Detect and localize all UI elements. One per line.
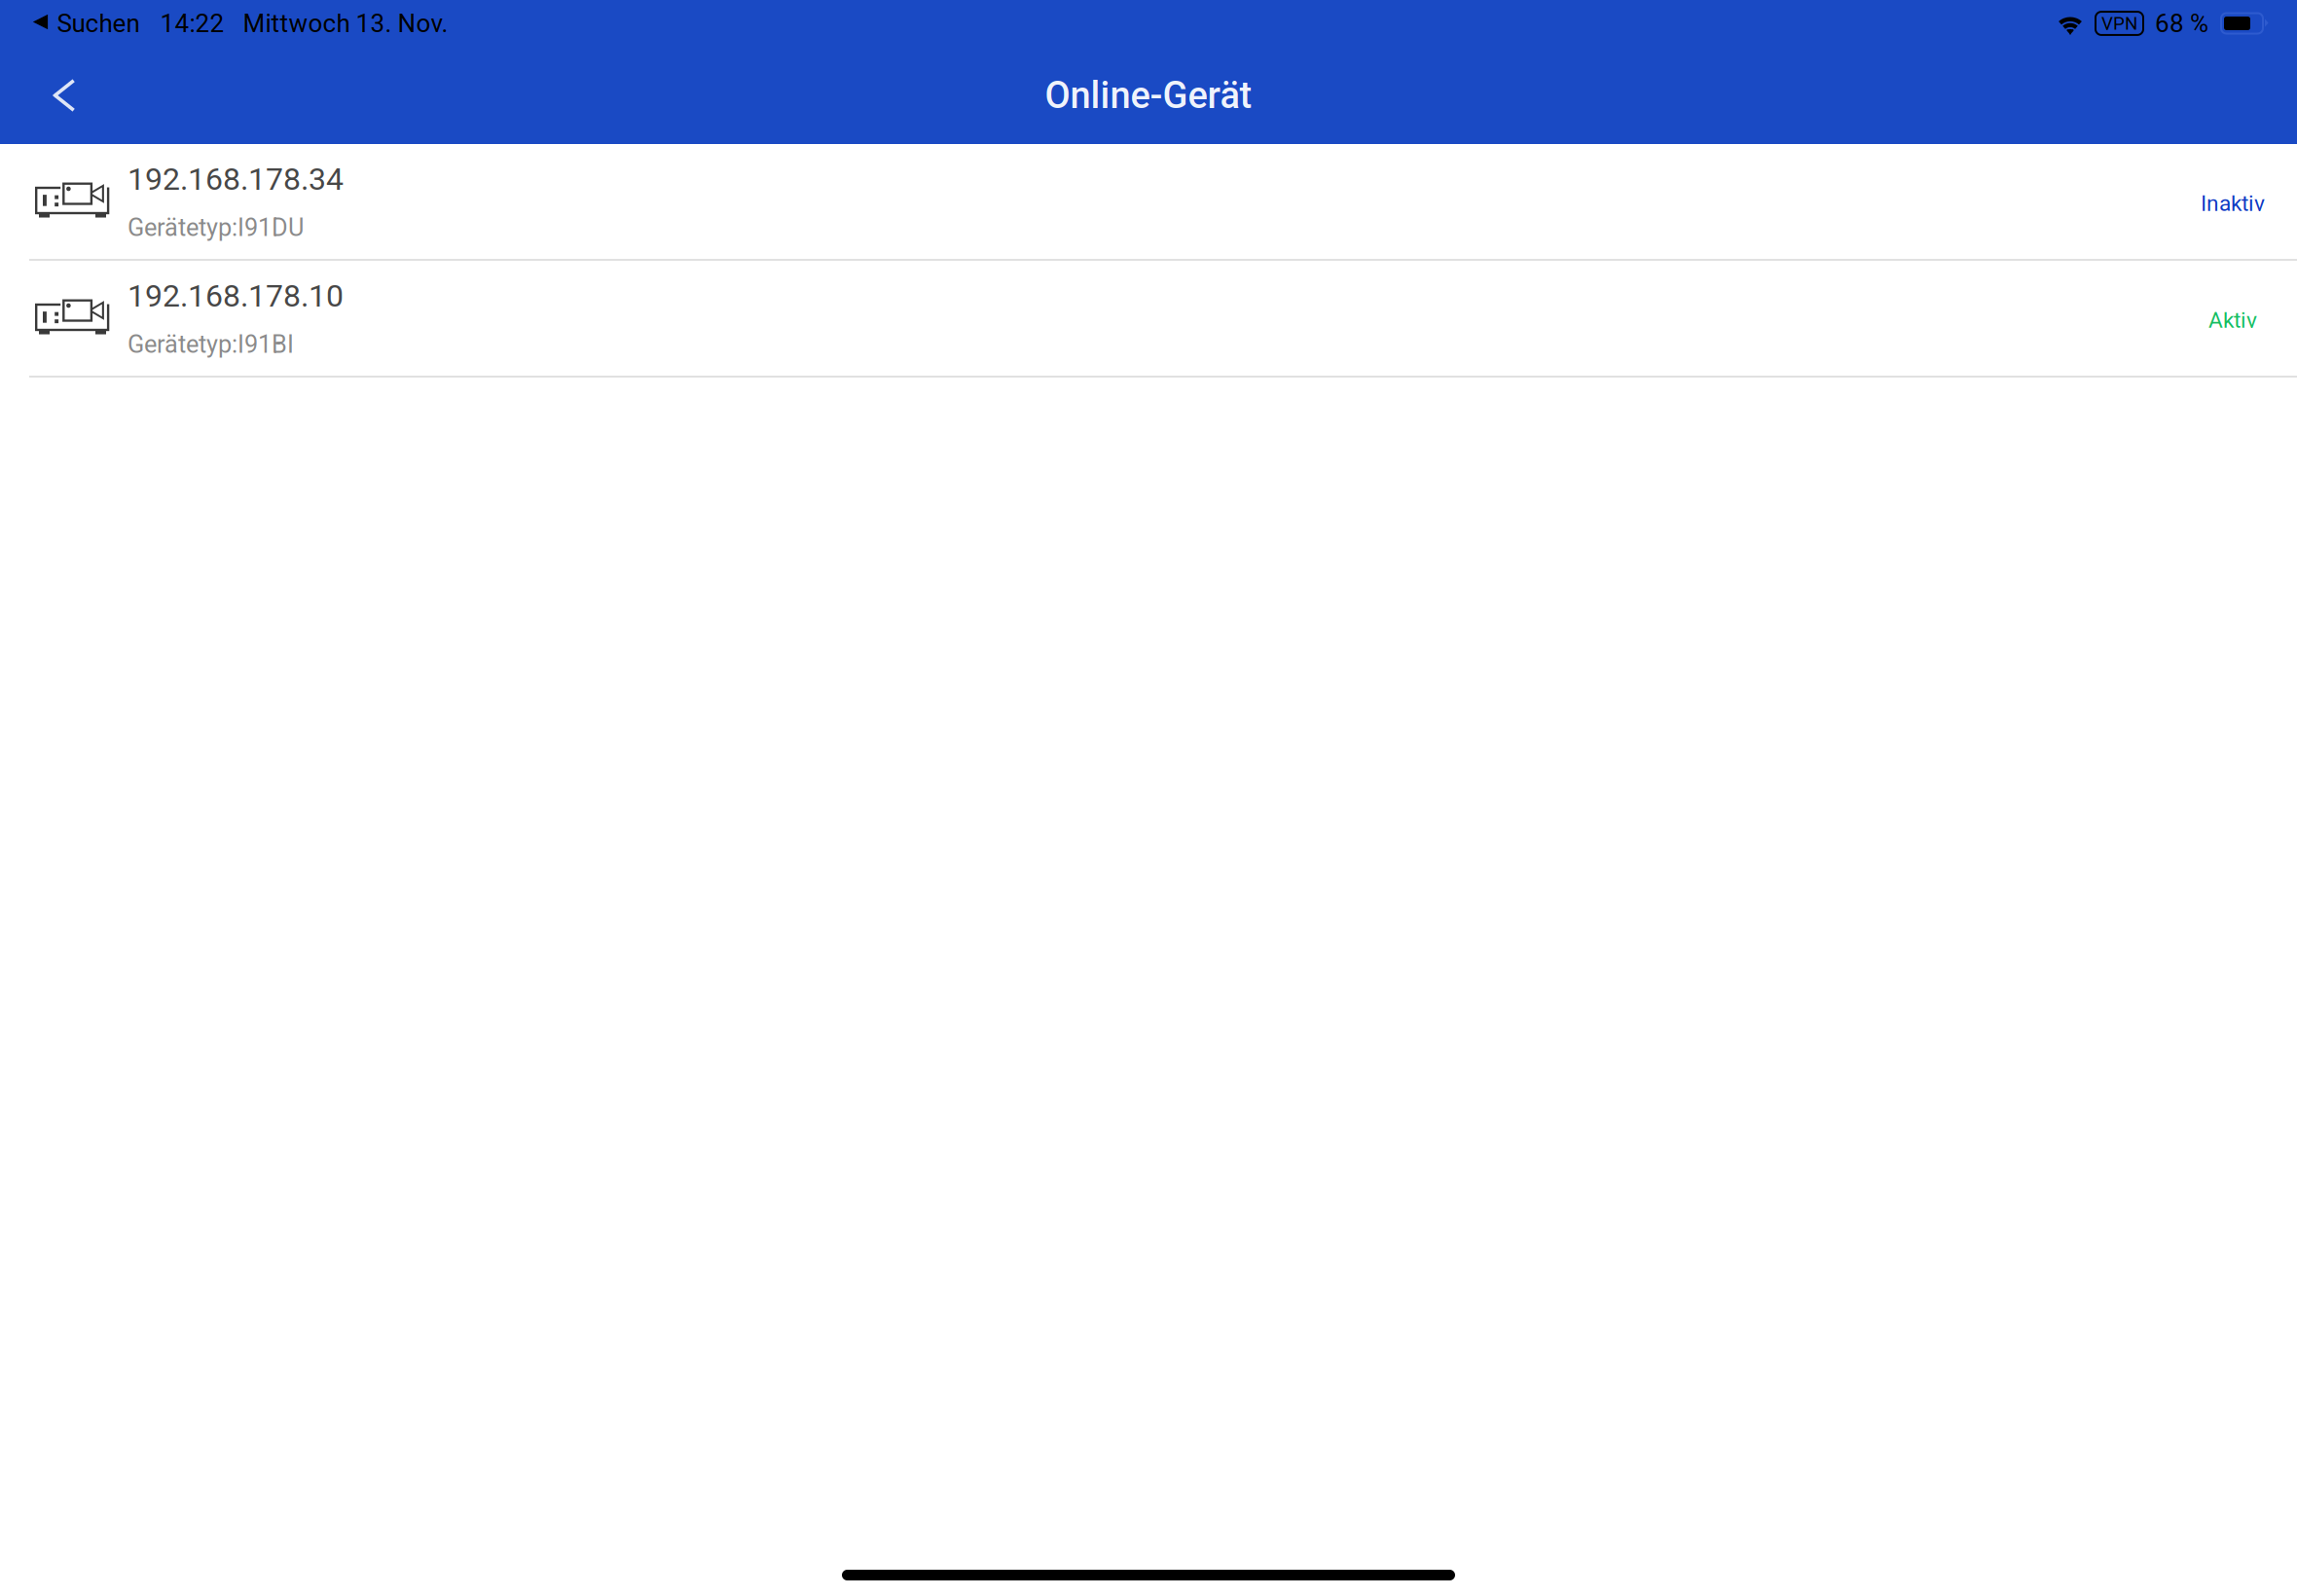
staticText: Online-Gerät (1045, 74, 1252, 117)
staticText: 192.168.178.34 (128, 161, 344, 197)
staticText: 192.168.178.10 (128, 278, 344, 314)
staticText: Suchen (57, 9, 140, 38)
staticText: Mittwoch 13. Nov. (243, 9, 448, 38)
staticText: VPN (2101, 13, 2137, 34)
button[interactable]: 192.168.178.10 (0, 261, 2297, 376)
staticText: Gerätetyp:I91DU (128, 213, 304, 242)
staticText: 14:22 (160, 9, 224, 38)
staticText: 68 % (2155, 9, 2208, 38)
staticText: Gerätetyp:I91BI (128, 330, 294, 359)
button[interactable]: Zurück (0, 47, 117, 144)
button[interactable]: 192.168.178.34 (0, 144, 2297, 259)
staticText: Aktiv (2208, 307, 2257, 333)
staticText: Inaktiv (2201, 190, 2265, 216)
